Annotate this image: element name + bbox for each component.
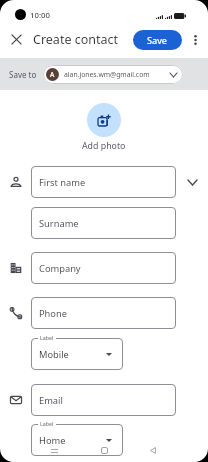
button[interactable]: A	[43, 65, 183, 84]
button[interactable]: Recents	[46, 443, 63, 459]
button[interactable]: Back	[145, 442, 161, 458]
staticText: Label	[40, 420, 54, 427]
button[interactable]: Home	[31, 424, 123, 456]
button[interactable]: Expand name fields	[176, 166, 208, 198]
staticText: Surname	[39, 217, 79, 230]
button[interactable]: Surname	[31, 207, 176, 239]
staticText: 10:00	[30, 10, 50, 21]
button[interactable]: Company	[31, 252, 176, 284]
button[interactable]: Add photo	[87, 103, 121, 137]
staticText: Phone	[39, 307, 67, 320]
staticText: First name	[39, 176, 86, 189]
button[interactable]: Mobile	[31, 338, 123, 370]
staticText: Company	[39, 262, 81, 275]
staticText: Add photo	[82, 140, 126, 152]
staticText: Label	[40, 334, 54, 341]
staticText: Create contact	[33, 31, 119, 48]
button[interactable]: Save	[133, 30, 182, 50]
button[interactable]: Home	[96, 442, 112, 458]
staticText: Email	[39, 394, 63, 407]
button[interactable]: More options	[186, 31, 204, 49]
staticText: Save to	[9, 69, 37, 80]
button[interactable]: Phone	[31, 297, 176, 329]
button[interactable]: First name	[31, 166, 176, 198]
staticText: Mobile	[39, 348, 69, 361]
staticText: A	[50, 70, 55, 79]
staticText: Home	[39, 434, 66, 447]
staticText: alan.jones.wm@gmail.com	[64, 70, 150, 79]
button[interactable]: Email	[31, 384, 176, 416]
button[interactable]: Close	[6, 30, 26, 50]
staticText: Save	[147, 34, 168, 47]
